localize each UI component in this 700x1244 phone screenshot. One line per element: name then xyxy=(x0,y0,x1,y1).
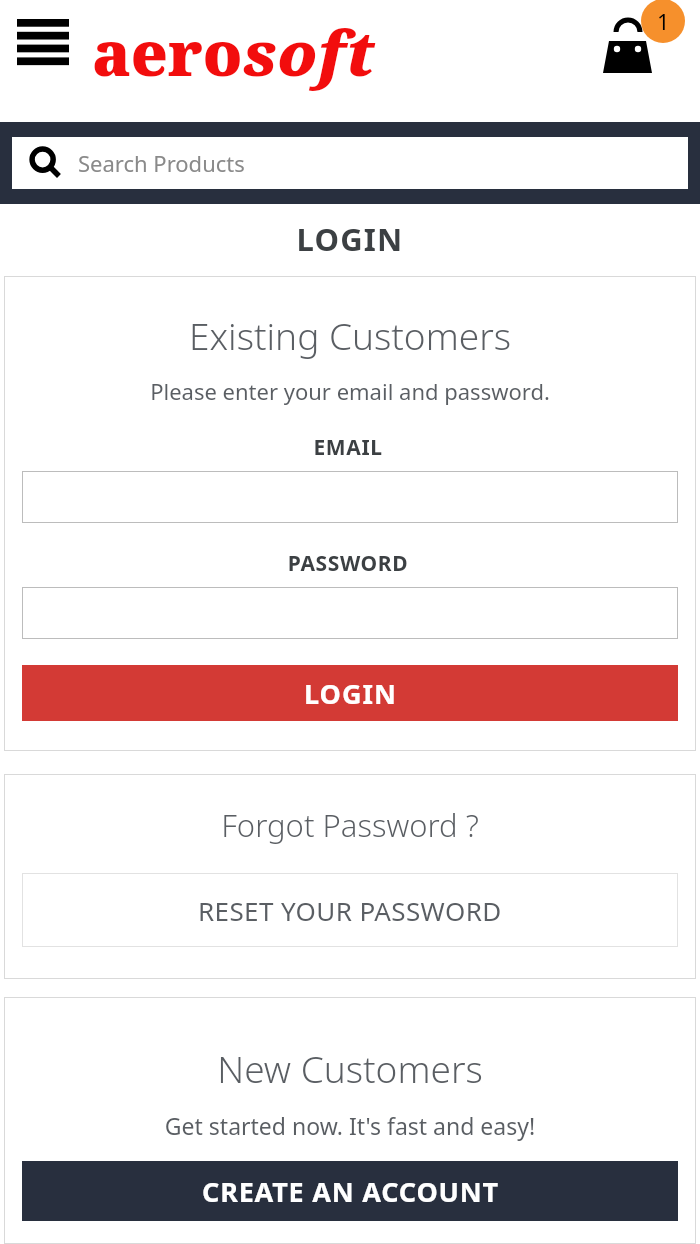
button[interactable]: Cart, 1 item xyxy=(596,0,690,86)
button[interactable]: LOGIN xyxy=(22,665,678,721)
button[interactable]: Search Products xyxy=(12,137,688,189)
button[interactable]: aero xyxy=(92,10,375,94)
staticText: Get started now. It's fast and easy! xyxy=(4,1110,696,1141)
staticText: 1 xyxy=(657,6,670,36)
staticText: soft xyxy=(243,10,375,94)
staticText: PASSWORD xyxy=(2,549,694,578)
button[interactable]: RESET YOUR PASSWORD xyxy=(22,873,678,947)
staticText: Search Products xyxy=(78,148,245,178)
staticText: Existing Customers xyxy=(4,310,696,360)
staticText: CREATE AN ACCOUNT xyxy=(202,1173,499,1210)
staticText: RESET YOUR PASSWORD xyxy=(198,893,502,928)
staticText: LOGIN xyxy=(0,218,700,260)
button[interactable]: Menu xyxy=(10,12,76,80)
staticText: aero xyxy=(92,10,243,94)
staticText: New Customers xyxy=(4,1043,696,1093)
button[interactable] xyxy=(22,587,678,639)
button[interactable] xyxy=(22,471,678,523)
staticText: Forgot Password ? xyxy=(4,804,696,846)
staticText: EMAIL xyxy=(2,433,694,462)
staticText: Please enter your email and password. xyxy=(4,376,696,406)
button[interactable]: CREATE AN ACCOUNT xyxy=(22,1161,678,1221)
staticText: LOGIN xyxy=(304,675,397,712)
